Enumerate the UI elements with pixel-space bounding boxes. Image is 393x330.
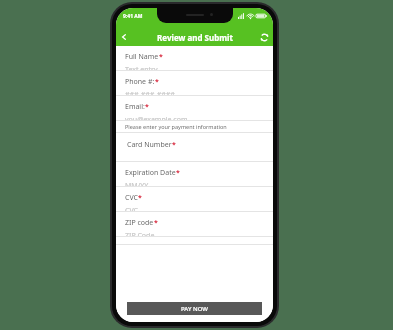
button[interactable]: Refresh — [255, 28, 273, 46]
staticText: * — [176, 168, 180, 178]
staticText: Review and Submit — [157, 32, 233, 43]
staticText: Please enter your payment information — [125, 123, 227, 130]
staticText: CVC — [125, 206, 138, 211]
staticText: Email: — [125, 102, 145, 112]
staticText: Full Name — [125, 52, 159, 62]
button[interactable]: Email: — [116, 96, 273, 120]
staticText: Card Number — [127, 140, 172, 150]
staticText: * — [154, 218, 158, 228]
staticText: you@example.com — [125, 115, 188, 120]
staticText: * — [172, 140, 176, 150]
staticText: * — [138, 193, 142, 203]
staticText: 9:41 AM — [123, 13, 143, 20]
staticText: * — [145, 102, 149, 112]
button[interactable]: Back — [116, 29, 132, 45]
staticText: Expiration Date — [125, 168, 176, 178]
button[interactable]: PAY NOW — [127, 302, 262, 315]
staticText: MM/YY — [125, 181, 149, 186]
staticText: * — [155, 77, 159, 87]
button[interactable]: Full Name — [116, 46, 273, 70]
staticText: Text entry — [125, 65, 158, 70]
staticText: ###-###-#### — [125, 90, 175, 95]
staticText: * — [159, 52, 163, 62]
staticText: ZIP code — [125, 218, 154, 228]
button[interactable]: Phone #: — [116, 71, 273, 95]
button[interactable]: ZIP code — [116, 212, 273, 236]
staticText: PAY NOW — [181, 305, 208, 313]
staticText: Phone #: — [125, 77, 155, 87]
button[interactable]: Card Number — [116, 133, 273, 161]
staticText: CVC — [125, 193, 138, 203]
button[interactable]: Expiration Date — [116, 162, 273, 186]
staticText: ZIP Code — [125, 231, 155, 236]
button[interactable]: CVC — [116, 187, 273, 211]
